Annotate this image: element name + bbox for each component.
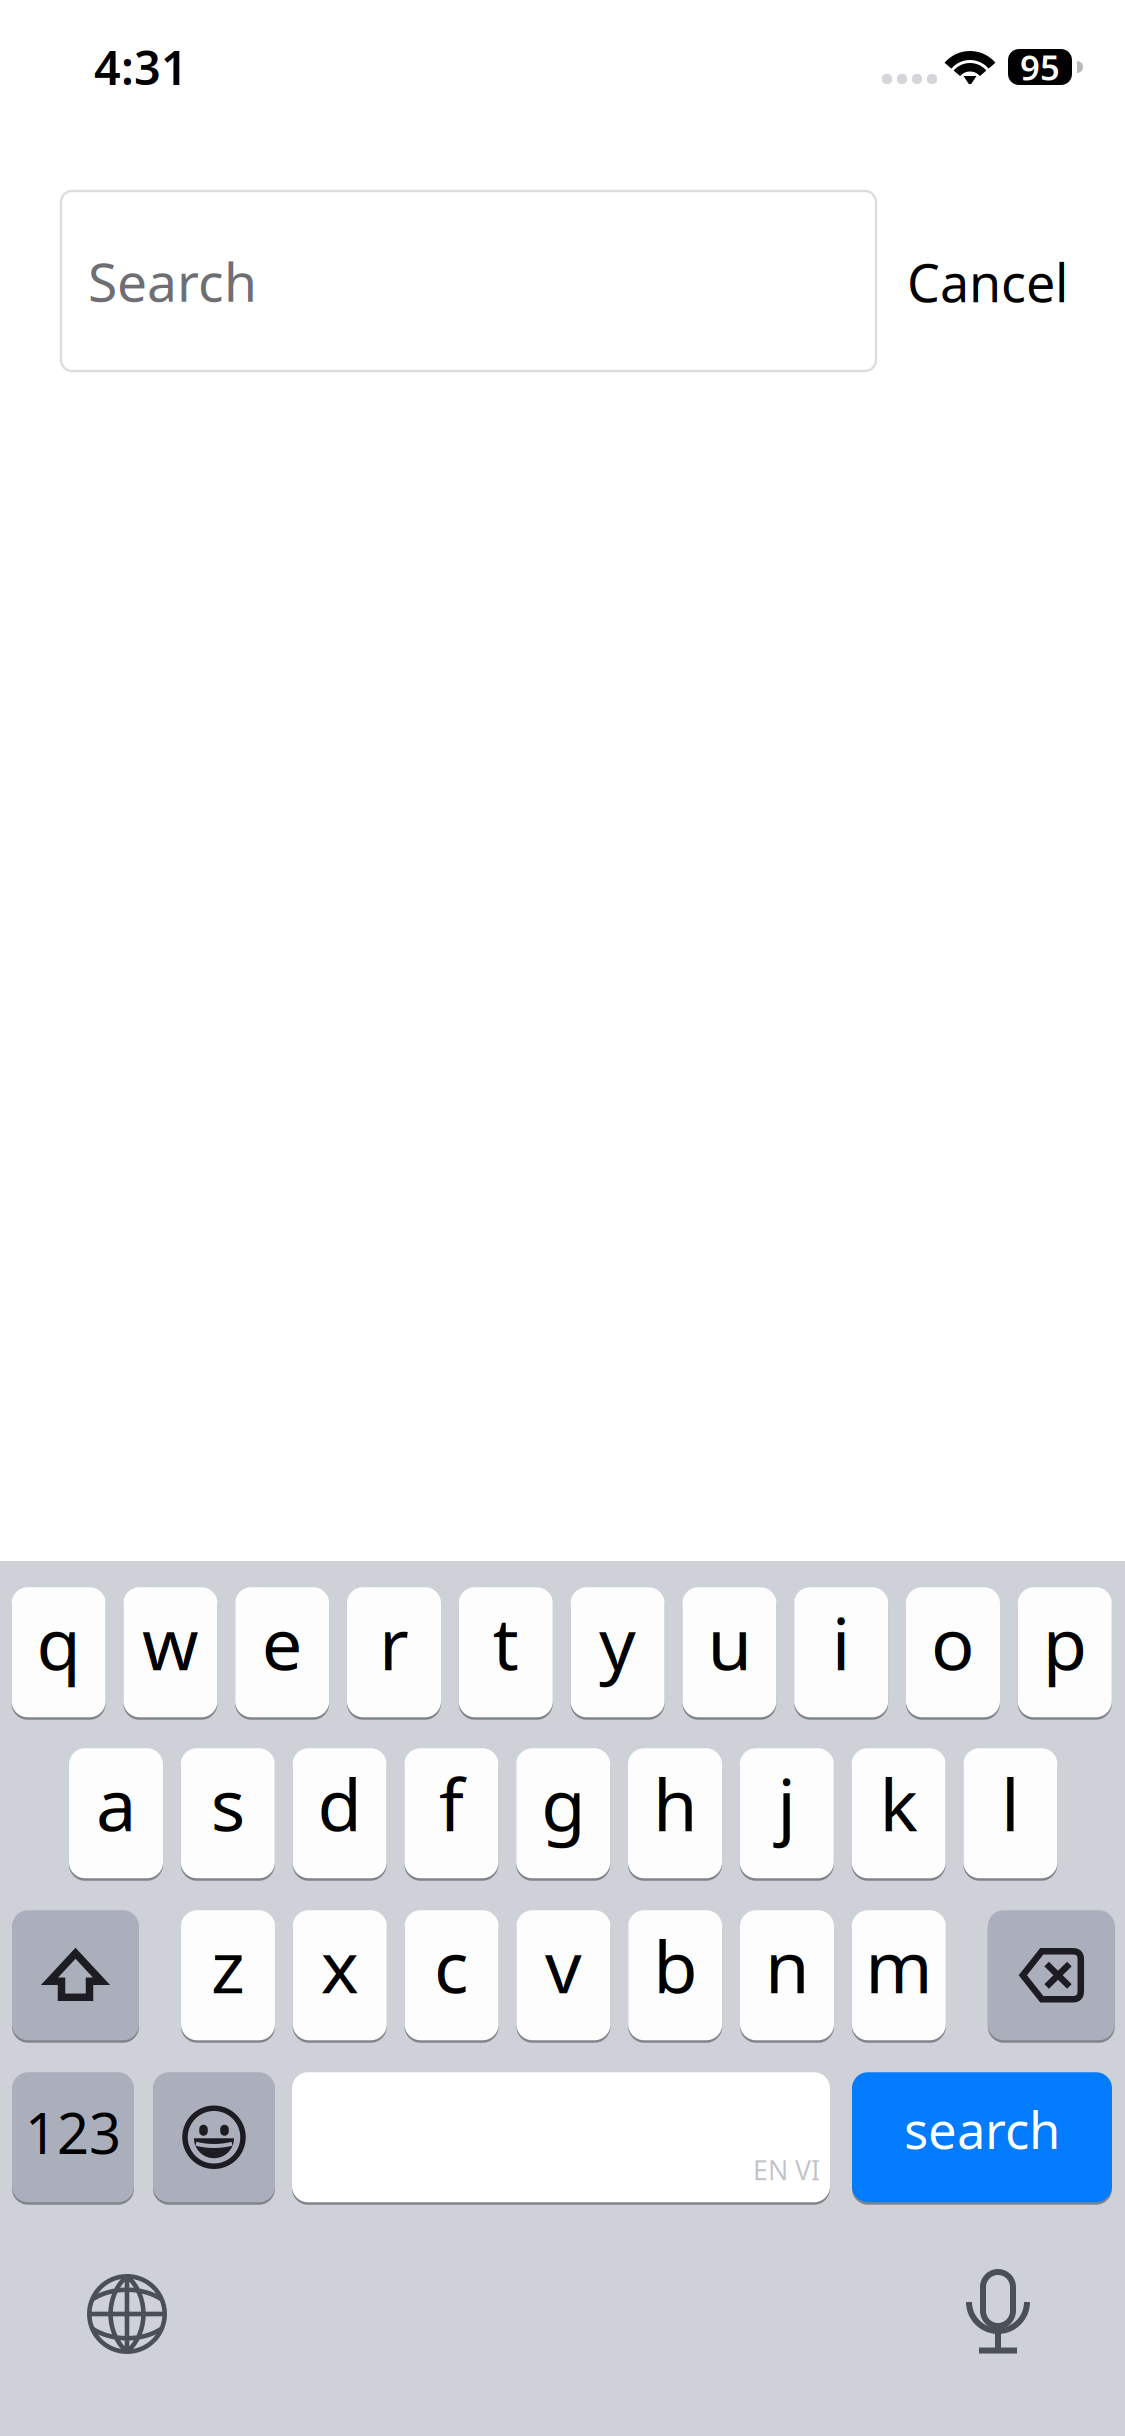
button[interactable]: a [69, 1747, 163, 1879]
button[interactable]: space [292, 2071, 830, 2203]
staticText: d [318, 1755, 362, 1851]
button[interactable]: v [516, 1909, 610, 2041]
staticText: r [379, 1594, 409, 1690]
staticText: t [493, 1594, 519, 1690]
staticText: i [832, 1594, 851, 1690]
staticText: y [599, 1594, 636, 1690]
staticText: p [1043, 1594, 1087, 1690]
button[interactable]: j [740, 1747, 834, 1879]
staticText: n [765, 1917, 809, 2013]
button[interactable]: Search field [61, 191, 876, 371]
button[interactable]: s [181, 1747, 275, 1879]
staticText: 95 [1020, 44, 1060, 90]
staticText: search [904, 2096, 1060, 2163]
button[interactable]: Delete [988, 1909, 1115, 2041]
staticText: g [541, 1755, 585, 1851]
staticText: c [434, 1917, 469, 2013]
button[interactable]: f [404, 1747, 498, 1879]
button[interactable]: t [459, 1586, 553, 1718]
staticText: j [777, 1755, 796, 1851]
button[interactable]: o [906, 1586, 1000, 1718]
button[interactable]: Emoji [153, 2071, 275, 2203]
button[interactable]: x [293, 1909, 387, 2041]
staticText: v [545, 1917, 582, 2013]
button[interactable]: Shift [12, 1909, 139, 2041]
staticText: 123 [25, 2095, 121, 2169]
button[interactable]: r [347, 1586, 441, 1718]
button[interactable]: g [516, 1747, 610, 1879]
button[interactable]: q [12, 1586, 106, 1718]
button[interactable]: Dictate [966, 2270, 1030, 2354]
button[interactable]: d [293, 1747, 387, 1879]
staticText: w [142, 1594, 199, 1690]
button[interactable]: Cancel [880, 222, 1095, 342]
button[interactable]: search [852, 2071, 1112, 2203]
staticText: o [931, 1594, 975, 1690]
staticText: Cancel [907, 247, 1068, 317]
button[interactable]: u [682, 1586, 776, 1718]
button[interactable]: h [628, 1747, 722, 1879]
staticText: z [211, 1917, 245, 2013]
button[interactable]: y [571, 1586, 665, 1718]
button[interactable]: e [235, 1586, 329, 1718]
staticText: l [1001, 1755, 1020, 1851]
staticText: Search [88, 246, 257, 316]
button[interactable]: w [123, 1586, 217, 1718]
staticText: EN VI [753, 2152, 820, 2187]
button[interactable]: n [740, 1909, 834, 2041]
button[interactable]: c [405, 1909, 499, 2041]
staticText: 4:31 [94, 36, 188, 98]
staticText: f [439, 1755, 464, 1851]
button[interactable]: z [181, 1909, 275, 2041]
button[interactable]: p [1018, 1586, 1112, 1718]
staticText: e [262, 1594, 303, 1690]
button[interactable]: Numbers [12, 2071, 134, 2203]
staticText: q [37, 1594, 81, 1690]
staticText: u [707, 1594, 751, 1690]
button[interactable]: m [852, 1909, 946, 2041]
button[interactable]: l [963, 1747, 1057, 1879]
button[interactable]: Next keyboard [87, 2274, 167, 2354]
staticText: k [880, 1755, 918, 1851]
button[interactable]: i [794, 1586, 888, 1718]
staticText: x [321, 1917, 359, 2013]
button[interactable]: b [628, 1909, 722, 2041]
button[interactable]: k [852, 1747, 946, 1879]
staticText: m [865, 1917, 932, 2013]
staticText: b [653, 1917, 697, 2013]
staticText: s [211, 1755, 245, 1851]
staticText: a [96, 1755, 136, 1851]
staticText: h [653, 1755, 697, 1851]
